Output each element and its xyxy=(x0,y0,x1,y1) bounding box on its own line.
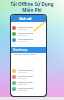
button[interactable] xyxy=(11,37,46,43)
staticText: Miễn Phí xyxy=(22,7,42,13)
staticText: Danh mục xyxy=(13,48,28,52)
staticText: Sách nói xyxy=(19,17,32,21)
button[interactable] xyxy=(11,80,46,86)
button[interactable] xyxy=(11,86,46,92)
button[interactable] xyxy=(11,74,46,80)
button[interactable] xyxy=(11,31,46,37)
staticText: Tải Offline Sử Dụng xyxy=(10,1,54,7)
button[interactable] xyxy=(11,25,46,31)
button[interactable] xyxy=(11,68,46,74)
